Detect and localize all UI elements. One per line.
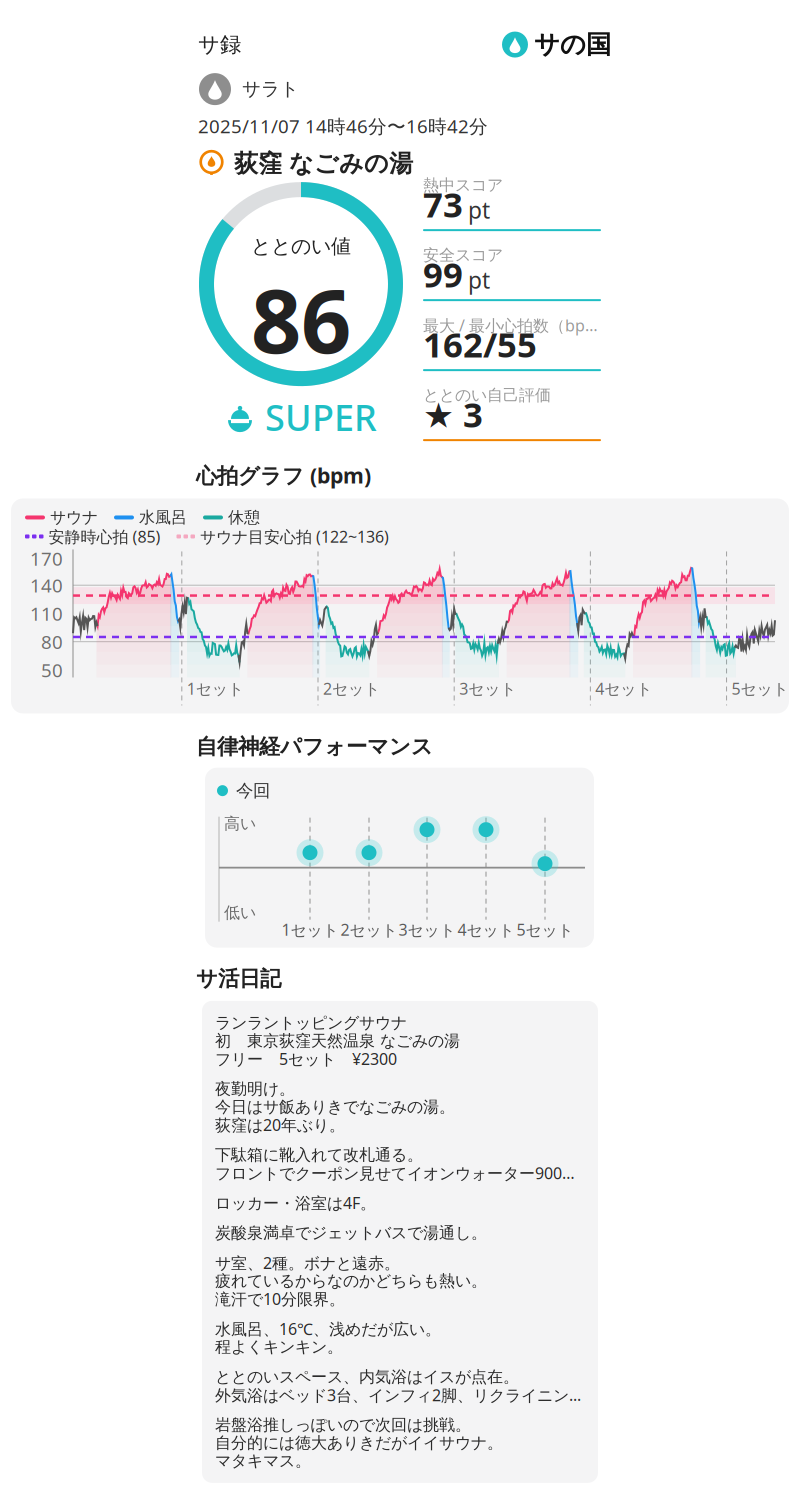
staticText: 最大 / 最小心拍数（bpm） <box>423 314 601 336</box>
staticText: 3セット <box>459 678 516 699</box>
staticText: 162/55 <box>423 321 537 367</box>
staticText: 初 東京荻窪天然温泉 なごみの湯 <box>215 1031 460 1051</box>
staticText: 荻窪は20年ぶり。 <box>215 1114 345 1135</box>
staticText: 水風呂、16℃、浅めだが広い。 <box>215 1318 441 1339</box>
staticText: 73 <box>423 181 463 227</box>
staticText: SUPER <box>265 393 377 441</box>
staticText: 炭酸泉満卓でジェットバスで湯通し。 <box>215 1223 487 1243</box>
staticText: フロントでクーポン見せてイオンウォーター900mlを買いタオルを貰う。 <box>215 1162 585 1184</box>
staticText: 今回 <box>236 780 270 801</box>
staticText: 滝汗で10分限界。 <box>215 1288 345 1309</box>
staticText: 程よくキンキン。 <box>215 1337 343 1357</box>
staticText: 岩盤浴推しっぽいので次回は挑戦。 <box>215 1415 471 1435</box>
staticText: 荻窪 なごみの湯 <box>234 149 413 178</box>
staticText: 4セット <box>457 919 514 940</box>
staticText: 1セット <box>281 919 338 940</box>
staticText: 安静時心拍 (85) <box>48 526 160 547</box>
staticText: 80 <box>41 629 63 654</box>
staticText: 99 <box>423 251 463 297</box>
staticText: サ活日記 <box>196 966 281 992</box>
staticText: サウナ <box>50 508 98 527</box>
staticText: サ録 <box>198 31 241 58</box>
staticText: ととのい値 <box>251 234 351 259</box>
staticText: 下駄箱に靴入れて改札通る。 <box>215 1145 423 1165</box>
staticText: サラト <box>242 78 299 101</box>
staticText: ととのい自己評価 <box>423 385 551 405</box>
staticText: 疲れているからなのかどちらも熱い。 <box>215 1271 487 1291</box>
staticText: 1セット <box>187 678 244 699</box>
staticText: 5セット <box>732 678 789 699</box>
staticText: pt <box>468 265 490 295</box>
staticText: ととのいスペース、内気浴はイスが点在。 <box>215 1367 519 1387</box>
staticText: 自分的には徳大ありきだがイイサウナ。 <box>215 1433 503 1453</box>
staticText: 低い <box>224 903 256 922</box>
staticText: 夜勤明け。 <box>215 1079 295 1099</box>
staticText: 自律神経パフォーマンス <box>196 733 433 760</box>
staticText: ランラントッピングサウナ <box>215 1013 407 1033</box>
staticText: 110 <box>30 601 63 626</box>
staticText: 50 <box>41 657 63 682</box>
staticText: サの国 <box>534 29 611 60</box>
staticText: マタキマス。 <box>215 1451 311 1471</box>
staticText: 4セット <box>595 678 652 699</box>
staticText: pt <box>468 195 490 225</box>
staticText: ロッカー・浴室は4F。 <box>215 1192 376 1213</box>
staticText: 170 <box>30 546 63 571</box>
staticText: 高い <box>224 814 256 833</box>
staticText: 水風呂 <box>139 508 187 527</box>
staticText: 2セット <box>323 678 380 699</box>
staticText: 5セット <box>516 919 573 940</box>
staticText: 熱中スコア <box>423 175 503 195</box>
staticText: 外気浴はベッド3台、インフィ2脚、リクライニング1台、イス多数。 <box>215 1384 585 1406</box>
staticText: 3セット <box>398 919 455 940</box>
staticText: サウナ目安心拍 (122~136) <box>200 526 389 547</box>
staticText: 140 <box>30 573 63 598</box>
staticText: 2セット <box>340 919 397 940</box>
staticText: フリー 5セット ¥2300 <box>215 1048 397 1069</box>
staticText: ★ 3 <box>423 391 483 437</box>
staticText: 86 <box>251 261 351 378</box>
staticText: 心拍グラフ (bpm) <box>196 461 371 489</box>
staticText: 今日はサ飯ありきでなごみの湯。 <box>215 1097 455 1117</box>
staticText: 2025/11/07 14時46分〜16時42分 <box>198 114 488 138</box>
staticText: 安全スコア <box>423 245 503 265</box>
staticText: サ室、2種。ボナと遠赤。 <box>215 1252 400 1273</box>
staticText: 休憩 <box>228 508 260 527</box>
